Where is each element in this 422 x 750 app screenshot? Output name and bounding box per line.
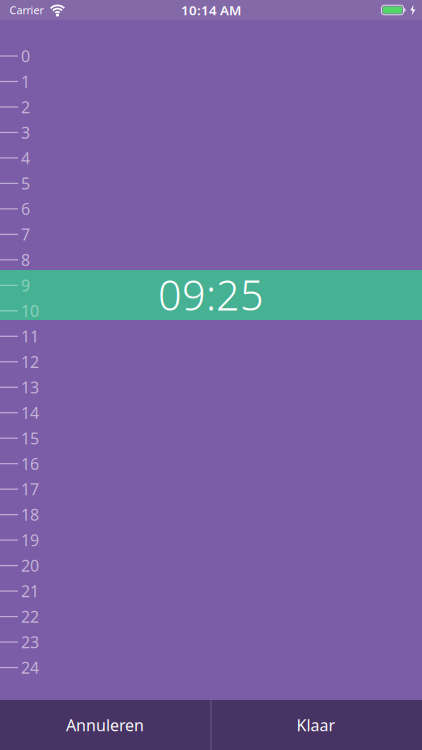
staticText: 5 bbox=[21, 173, 30, 194]
staticText: 9 bbox=[21, 275, 30, 296]
staticText: 0 bbox=[21, 45, 30, 67]
staticText: 17 bbox=[21, 478, 39, 500]
staticText: 10 bbox=[21, 300, 39, 321]
staticText: 23 bbox=[21, 631, 39, 653]
staticText: Klaar bbox=[296, 714, 335, 736]
button[interactable]: Annuleren bbox=[0, 700, 210, 750]
staticText: 1 bbox=[21, 71, 30, 92]
staticText: 21 bbox=[21, 580, 39, 602]
staticText: 13 bbox=[21, 377, 39, 398]
staticText: 4 bbox=[21, 147, 30, 168]
staticText: 3 bbox=[21, 122, 30, 143]
staticText: 2 bbox=[21, 96, 30, 117]
staticText: 6 bbox=[21, 198, 30, 219]
staticText: 09:25 bbox=[158, 267, 264, 322]
staticText: 10:14 AM bbox=[181, 1, 241, 19]
button[interactable]: Klaar bbox=[211, 700, 421, 750]
staticText: 22 bbox=[21, 606, 39, 627]
staticText: Annuleren bbox=[66, 714, 144, 736]
staticText: 15 bbox=[21, 428, 39, 449]
staticText: 12 bbox=[21, 351, 39, 372]
staticText: Carrier bbox=[9, 3, 43, 17]
staticText: 7 bbox=[21, 224, 30, 245]
staticText: 14 bbox=[21, 402, 39, 423]
staticText: 8 bbox=[21, 249, 30, 270]
staticText: 16 bbox=[21, 453, 39, 474]
staticText: 11 bbox=[21, 326, 39, 347]
staticText: 19 bbox=[21, 529, 39, 551]
staticText: 20 bbox=[21, 555, 39, 576]
staticText: 24 bbox=[21, 657, 39, 678]
button[interactable]: 09:25 bbox=[0, 270, 422, 320]
staticText: 18 bbox=[21, 504, 39, 525]
